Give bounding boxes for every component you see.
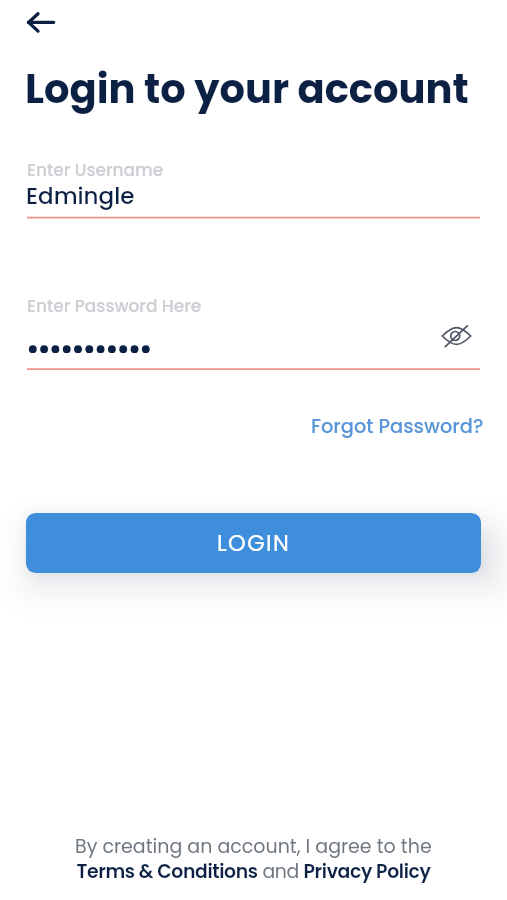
staticText: LOGIN: [217, 527, 291, 558]
button[interactable]: LOGIN: [26, 513, 481, 573]
staticText: Edmingle: [26, 180, 135, 212]
staticText: Terms & Conditions and Privacy Policy: [76, 858, 431, 884]
staticText: Forgot Password?: [311, 413, 484, 440]
staticText: Login to your account: [25, 61, 469, 117]
button[interactable]: Back: [8, 2, 70, 44]
staticText: Enter Password Here: [27, 294, 202, 318]
staticText: By creating an account, I agree to the: [75, 833, 432, 860]
staticText: Enter Username: [27, 158, 164, 182]
button[interactable]: Show password: [434, 314, 479, 358]
button[interactable]: Forgot Password?: [301, 407, 494, 446]
